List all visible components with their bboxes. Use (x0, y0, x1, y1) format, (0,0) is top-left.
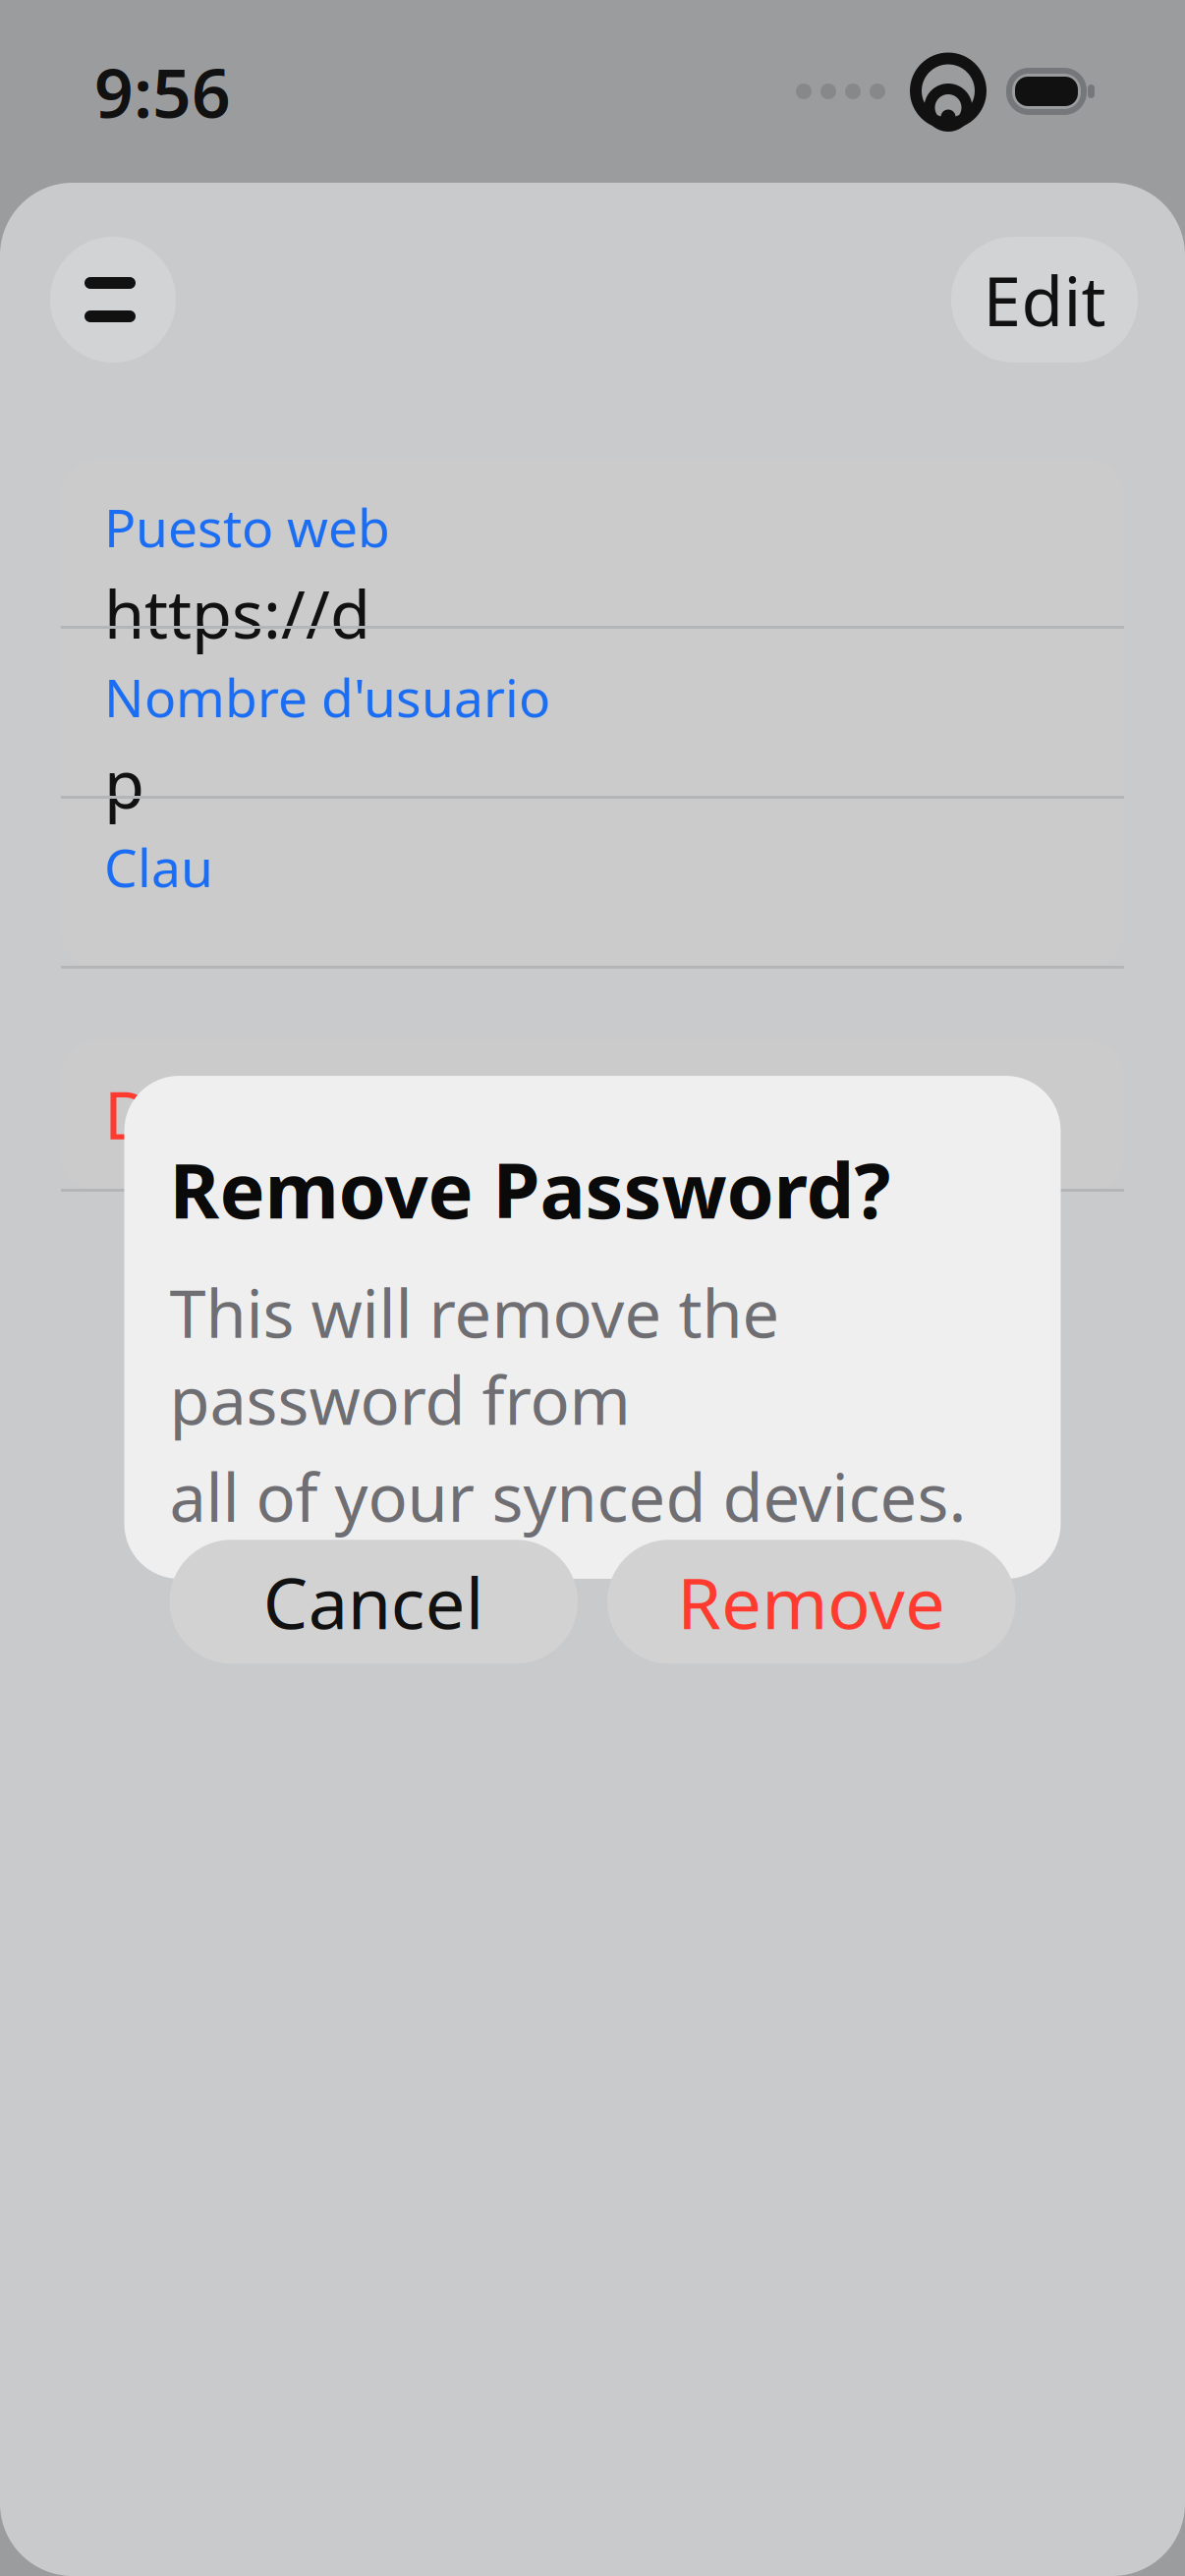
staticText: 9:56 (94, 46, 231, 137)
staticText: Edit (983, 254, 1106, 345)
staticText: p (104, 740, 144, 827)
button[interactable]: Clau (61, 799, 1124, 966)
staticText: Remove Password? (169, 1139, 891, 1240)
staticText: Nombre d'usuario (104, 662, 550, 732)
staticText: Puesto web (104, 492, 390, 562)
staticText: Clau (104, 832, 213, 902)
button[interactable]: Edit (951, 237, 1138, 363)
button[interactable]: Delete Password (61, 1039, 1124, 1189)
button[interactable]: Nombre d'usuario (61, 629, 1124, 796)
button[interactable]: Cancel (169, 1540, 578, 1664)
staticText: all of your synced devices. (169, 1453, 966, 1540)
staticText: Cancel (263, 1555, 484, 1649)
button[interactable]: Back (50, 237, 176, 363)
button[interactable]: Puesto web (61, 459, 1124, 626)
staticText: Delete Password (104, 1071, 616, 1158)
button[interactable]: Remove (607, 1540, 1016, 1664)
staticText: Remove (677, 1555, 945, 1649)
staticText: This will remove the password from (169, 1269, 780, 1443)
staticText: https://d (104, 570, 370, 657)
